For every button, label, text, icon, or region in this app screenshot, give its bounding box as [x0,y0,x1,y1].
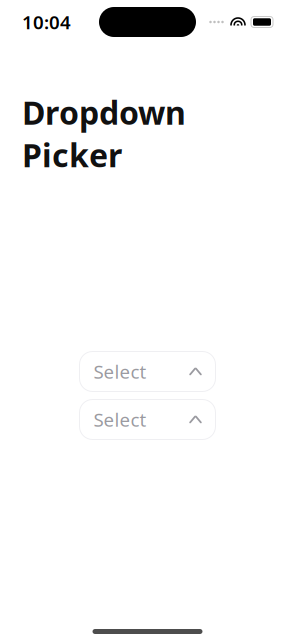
button[interactable]: Select [79,351,215,391]
staticText: 10:04 [22,10,71,34]
staticText: Select [93,407,146,432]
button[interactable]: Select [79,399,215,439]
staticText: Select [93,359,146,384]
staticText: Dropdown Picker [22,91,186,176]
